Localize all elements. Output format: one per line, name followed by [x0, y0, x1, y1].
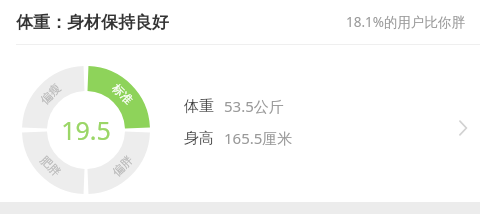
staticText: 偏胖 [109, 153, 136, 179]
button[interactable]: 查看详情 [446, 106, 480, 150]
staticText: 体重：身材保持良好 [16, 12, 169, 33]
staticText: 肥胖 [37, 153, 64, 179]
staticText: 身高 [184, 129, 214, 148]
staticText: 18.1%的用户比你胖 [346, 13, 466, 31]
staticText: 标准 [109, 81, 136, 107]
staticText: 165.5厘米 [224, 128, 293, 148]
staticText: 偏瘦 [37, 81, 64, 107]
staticText: 体重 [184, 97, 214, 116]
staticText: 19.5 [61, 113, 111, 147]
button[interactable]: 19.5 [22, 66, 150, 194]
staticText: 53.5公斤 [224, 96, 284, 116]
